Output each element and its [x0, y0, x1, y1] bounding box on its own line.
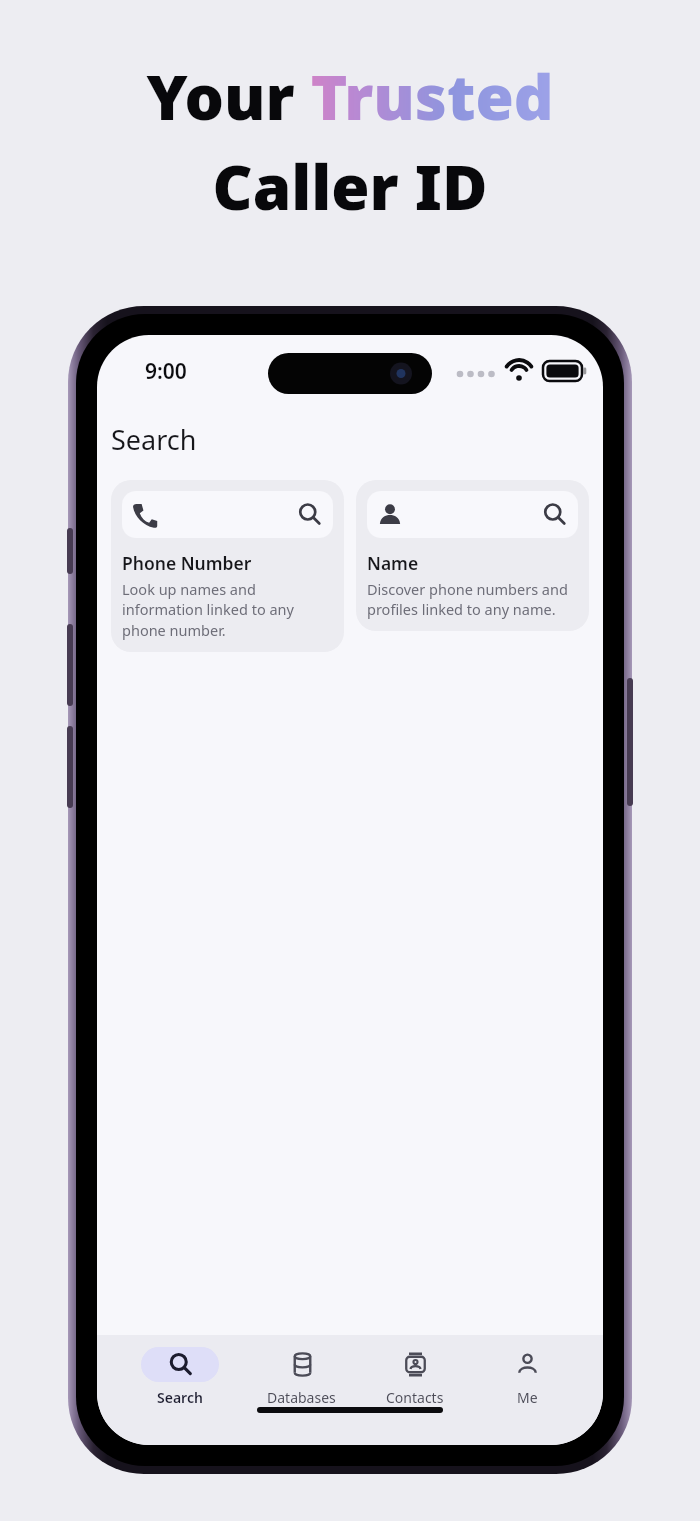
other: Contacts: [383, 1347, 447, 1382]
other: Search: [141, 1347, 219, 1382]
staticText: Name: [367, 551, 419, 575]
staticText: Contacts: [386, 1388, 444, 1407]
staticText: 9:00: [145, 357, 187, 386]
button[interactable]: Contacts: [379, 1347, 451, 1407]
other: Me: [495, 1347, 559, 1382]
button[interactable]: Search: [137, 1347, 223, 1407]
other: Databases: [270, 1347, 334, 1382]
staticText: Search: [157, 1388, 203, 1407]
button[interactable]: Name: [356, 480, 589, 631]
button[interactable]: Databases: [263, 1347, 340, 1407]
staticText: Look up names and information linked to …: [122, 579, 333, 641]
staticText: Databases: [267, 1388, 336, 1407]
staticText: Search: [111, 421, 197, 458]
staticText: Your Trusted: [146, 54, 554, 138]
staticText: Me: [517, 1388, 538, 1407]
button[interactable]: Phone Number: [111, 480, 344, 652]
staticText: Caller ID: [212, 144, 488, 228]
button[interactable]: Me: [491, 1347, 563, 1407]
staticText: Discover phone numbers and profiles link…: [367, 579, 578, 620]
staticText: Phone Number: [122, 551, 252, 575]
